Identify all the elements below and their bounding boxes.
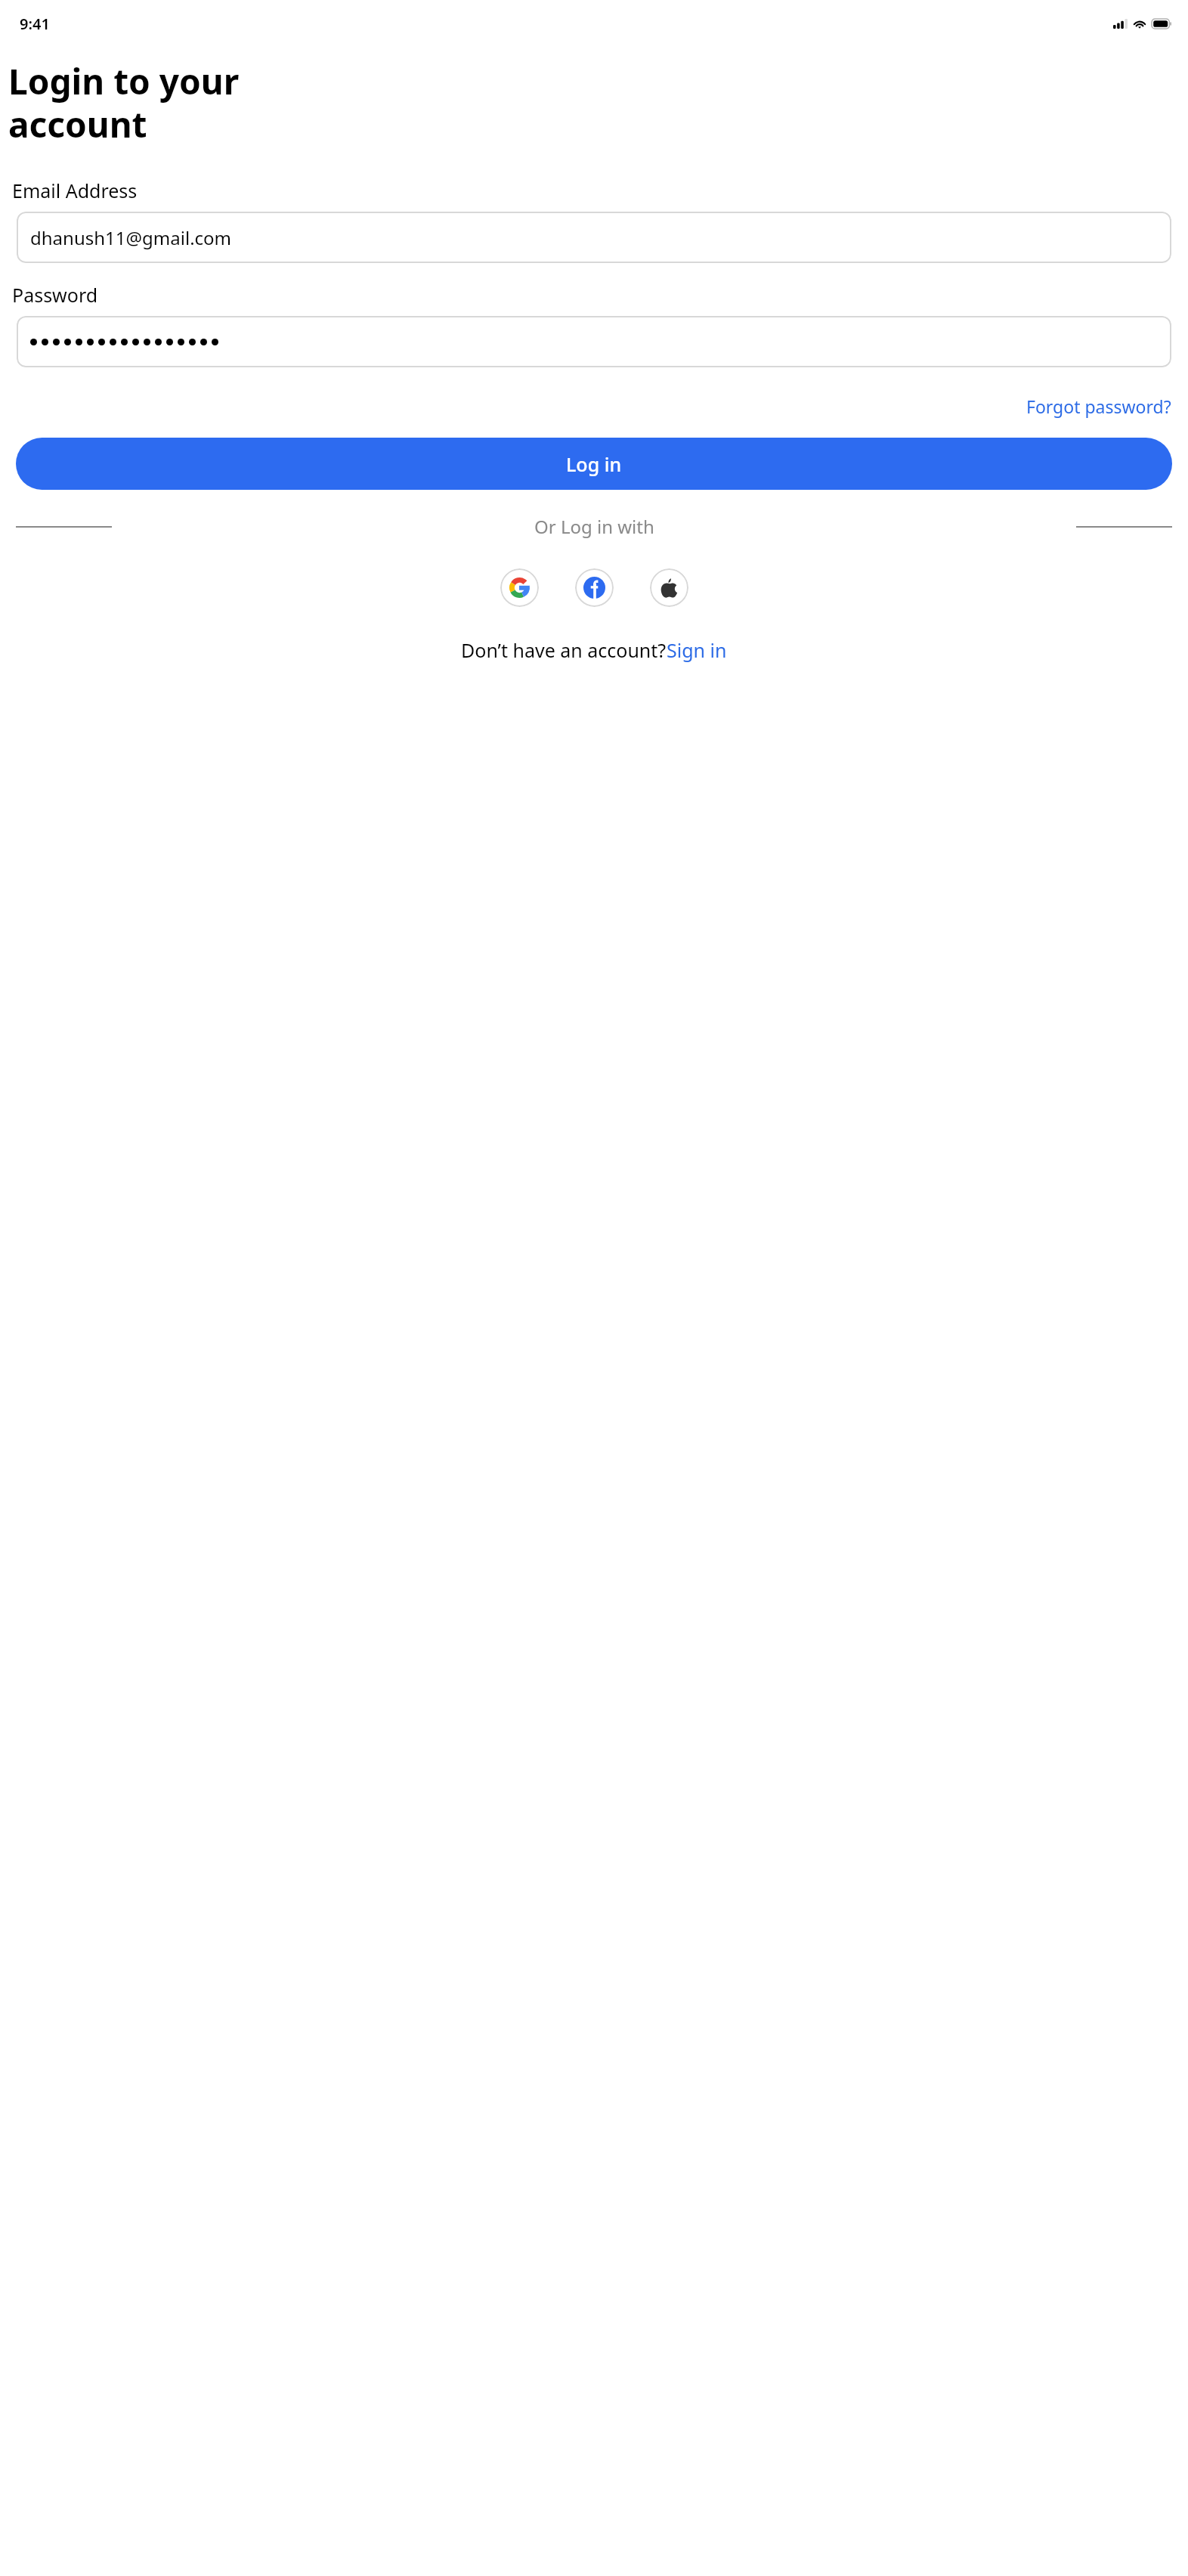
staticText: Password xyxy=(12,282,98,308)
button[interactable]: Sign in with Apple xyxy=(650,568,688,607)
button[interactable]: Sign in with Google xyxy=(500,568,539,607)
staticText: Forgot password? xyxy=(1026,395,1171,418)
staticText: dhanush11@gmail.com xyxy=(30,225,232,250)
button[interactable] xyxy=(17,316,1171,367)
staticText: Sign in xyxy=(667,637,727,663)
staticText: 9:41 xyxy=(20,14,50,34)
button[interactable]: dhanush11@gmail.com xyxy=(17,212,1171,263)
button[interactable]: Log in xyxy=(16,438,1172,490)
staticText: Don’t have an account? xyxy=(461,637,667,663)
button[interactable]: Sign in with Facebook xyxy=(575,568,614,607)
button[interactable]: Forgot password? xyxy=(1010,390,1188,423)
staticText: Login to your account xyxy=(8,57,240,147)
button[interactable]: Sign in xyxy=(667,637,727,663)
staticText: Email Address xyxy=(12,178,138,203)
staticText: Log in xyxy=(566,451,622,477)
staticText: Or Log in with xyxy=(534,514,654,539)
